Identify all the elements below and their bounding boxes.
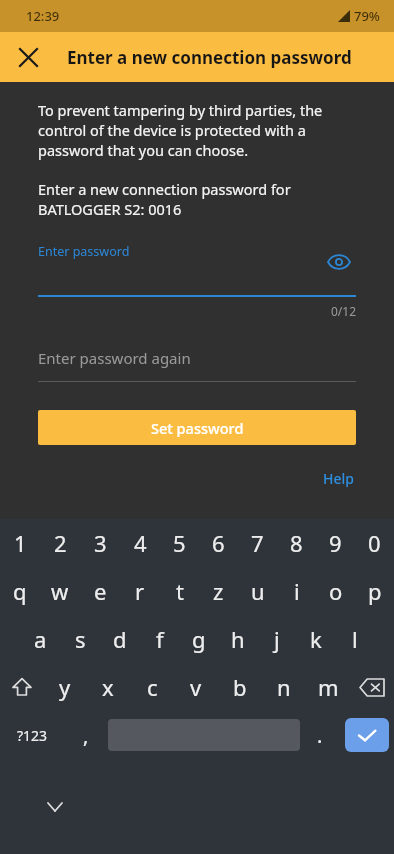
staticText: . [317,722,323,749]
staticText: e [94,576,107,606]
staticText: a [34,624,47,654]
staticText: To prevent tampering by third parties, t… [38,100,356,160]
button[interactable]: g [179,615,218,663]
button[interactable]: p [355,567,394,615]
button[interactable]: k [296,615,335,663]
button[interactable]: e [80,567,120,615]
button[interactable]: a [20,615,60,663]
staticText: j [274,624,280,654]
button[interactable]: Show password [322,245,356,279]
staticText: i [294,576,300,606]
staticText: Enter a new connection password [67,46,352,69]
button[interactable]: 9 [316,519,355,567]
staticText: 1 [14,528,27,558]
staticText: Enter a new connection password for BATL… [38,179,356,219]
staticText: 0 [368,528,381,558]
staticText: x [102,672,114,702]
button[interactable]: q [0,567,40,615]
button[interactable]: Backspace [350,663,394,711]
staticText: m [318,672,339,702]
staticText: 0/12 [38,303,356,319]
staticText: s [75,624,86,654]
button[interactable]: ?123 [0,711,64,759]
button[interactable]: r [120,567,160,615]
button[interactable]: s [60,615,100,663]
staticText: Help [323,469,354,488]
staticText: d [113,624,127,654]
button[interactable]: Close [10,39,46,75]
staticText: ?123 [17,726,48,745]
staticText: y [59,672,71,702]
staticText: Enter password [38,243,130,260]
staticText: z [213,576,224,606]
button[interactable]: h [218,615,257,663]
staticText: 4 [134,528,147,558]
staticText: 79% [354,7,380,25]
button[interactable]: 6 [199,519,238,567]
button[interactable]: t [160,567,199,615]
staticText: g [192,624,206,654]
button[interactable]: Shift [0,663,43,711]
staticText: l [352,624,358,654]
button[interactable]: 7 [238,519,277,567]
button[interactable]: v [174,663,218,711]
button[interactable]: c [130,663,174,711]
button[interactable]: Set password [38,410,356,445]
staticText: 7 [251,528,264,558]
button[interactable]: i [277,567,316,615]
staticText: r [135,576,145,606]
staticText: Set password [151,418,244,438]
button[interactable]: Hide keyboard [38,790,72,824]
button[interactable]: Enter [345,718,389,752]
button[interactable]: 0 [355,519,394,567]
button[interactable]: 4 [120,519,160,567]
staticText: t [176,576,184,606]
staticText: c [147,672,158,702]
staticText: 5 [173,528,186,558]
button[interactable]: Help [321,465,356,492]
button[interactable]: j [257,615,296,663]
staticText: 9 [329,528,342,558]
button[interactable]: y [43,663,86,711]
button[interactable]: u [238,567,277,615]
button[interactable]: z [199,567,238,615]
button[interactable]: , [64,711,108,759]
staticText: u [251,576,265,606]
button[interactable]: n [262,663,306,711]
staticText: k [310,624,322,654]
button[interactable]: f [140,615,179,663]
button[interactable]: 3 [80,519,120,567]
staticText: Enter password again [38,348,191,368]
staticText: n [277,672,291,702]
button[interactable]: 5 [160,519,199,567]
staticText: 2 [54,528,67,558]
button[interactable]: x [86,663,130,711]
staticText: , [83,722,89,749]
staticText: 6 [212,528,225,558]
staticText: b [233,672,247,702]
staticText: h [231,624,245,654]
button[interactable]: d [100,615,140,663]
staticText: p [368,576,382,606]
staticText: q [13,576,27,606]
staticText: 12:39 [26,7,60,25]
button[interactable]: b [218,663,262,711]
staticText: w [51,576,69,606]
staticText: o [329,576,343,606]
button[interactable]: l [335,615,374,663]
button[interactable]: 2 [40,519,80,567]
button[interactable]: Enter password again [38,343,356,373]
button[interactable]: o [316,567,355,615]
staticText: 8 [290,528,303,558]
button[interactable]: 1 [0,519,40,567]
button[interactable]: . [300,711,340,759]
button[interactable]: w [40,567,80,615]
staticText: v [190,672,202,702]
staticText: 3 [94,528,107,558]
button[interactable]: Enter password [38,243,356,295]
button[interactable]: m [306,663,350,711]
button[interactable]: 8 [277,519,316,567]
staticText: f [156,624,164,654]
